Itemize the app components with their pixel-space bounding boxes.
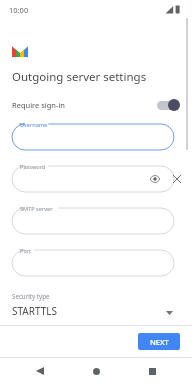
staticText: Require sign-in (12, 100, 65, 110)
button[interactable]: SMTP server (0, 202, 192, 238)
staticText: Port (20, 247, 32, 255)
staticText: 10:00 (9, 5, 29, 15)
button[interactable]: NEXT (138, 333, 180, 350)
staticText: NEXT (150, 337, 169, 347)
staticText: Username (20, 121, 48, 129)
button[interactable]: Security type (0, 288, 192, 328)
button[interactable]: Recent apps (140, 359, 164, 383)
staticText: Outgoing server settings (12, 69, 147, 85)
staticText: SMTP server (20, 205, 53, 213)
button[interactable]: Username (0, 118, 192, 154)
button[interactable]: Port (0, 244, 192, 280)
button[interactable]: Show password (148, 172, 162, 186)
button[interactable]: Home (84, 359, 108, 383)
staticText: Password (20, 163, 46, 171)
staticText: STARTTLS (12, 304, 58, 318)
staticText: Security type (12, 292, 50, 300)
button[interactable]: Require sign-in (0, 94, 192, 116)
button[interactable]: Back (28, 359, 52, 383)
button[interactable]: Clear (170, 172, 184, 186)
button[interactable]: Password (0, 160, 192, 196)
